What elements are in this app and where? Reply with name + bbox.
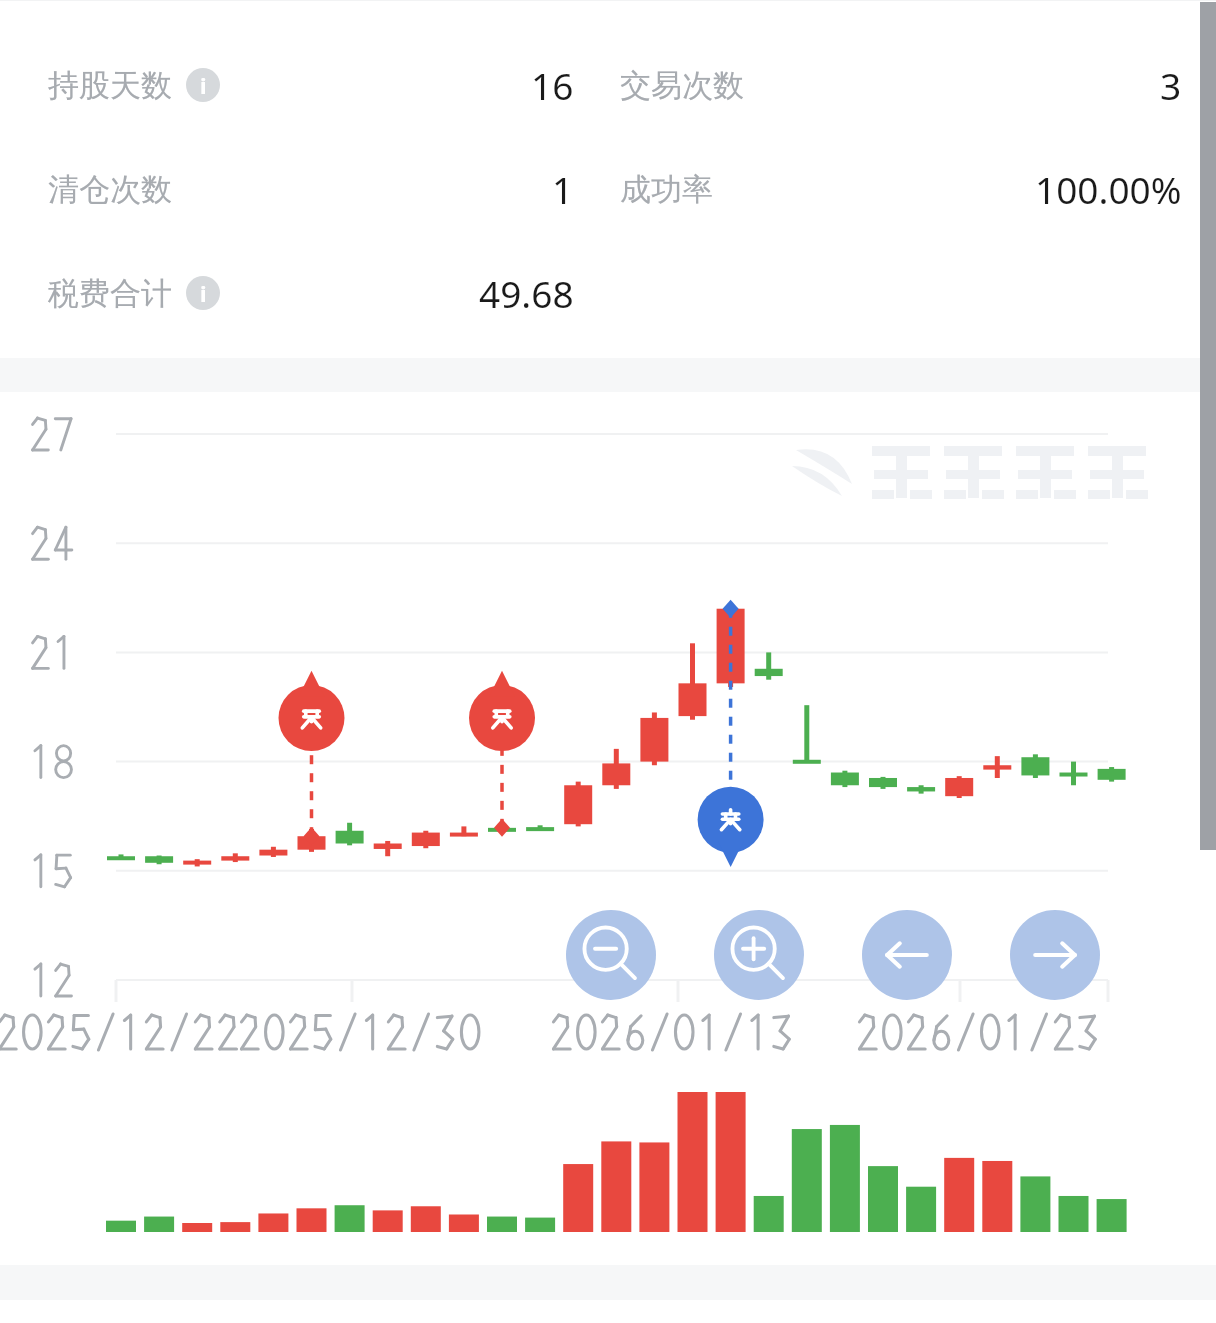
button[interactable]: Zoom in — [714, 910, 804, 1000]
staticText: 交易次数 — [620, 66, 744, 105]
staticText: 税费合计 — [48, 274, 172, 313]
staticText: i — [200, 278, 207, 308]
staticText: 成功率 — [620, 170, 713, 209]
staticText: 持股天数 — [48, 66, 172, 105]
staticText: 1 — [552, 164, 574, 214]
staticText: 16 — [531, 60, 574, 110]
button[interactable]: Pan left — [862, 910, 952, 1000]
staticText: 100.00% — [1035, 164, 1182, 214]
button[interactable]: Info — [186, 68, 220, 102]
staticText: 3 — [1160, 60, 1182, 110]
staticText: 49.68 — [479, 268, 574, 318]
staticText: i — [200, 70, 207, 100]
button[interactable]: Pan right — [1010, 910, 1100, 1000]
button[interactable]: Info — [186, 276, 220, 310]
staticText: 清仓次数 — [48, 170, 172, 209]
button[interactable]: Zoom out — [566, 910, 656, 1000]
